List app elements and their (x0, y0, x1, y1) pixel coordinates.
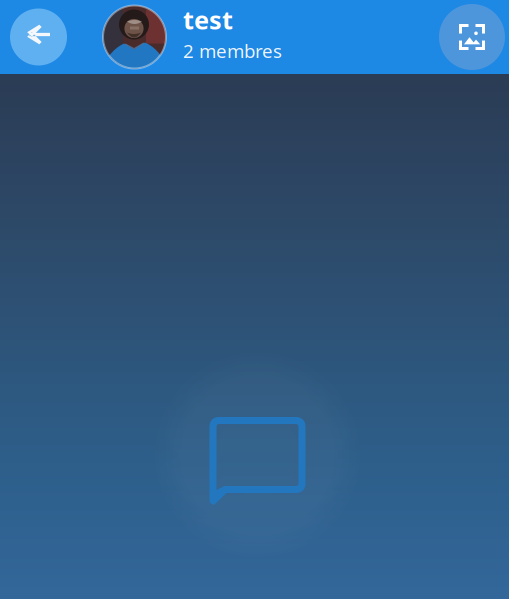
button[interactable]: Media (439, 4, 505, 70)
staticText: test (183, 3, 233, 36)
button[interactable]: Back (10, 8, 67, 65)
staticText: 2 membres (183, 38, 282, 63)
button[interactable]: test (67, 5, 439, 68)
